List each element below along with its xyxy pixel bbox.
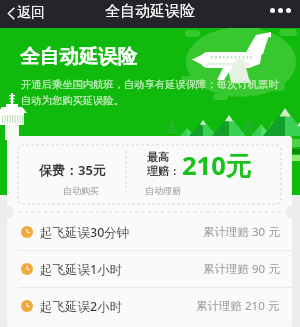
staticText: 返回 xyxy=(17,4,45,22)
button[interactable]: 起飞延误30分钟 xyxy=(7,214,292,250)
staticText: 起飞延误1小时 xyxy=(40,261,123,278)
staticText: 210元 xyxy=(182,148,252,183)
staticText: 起飞延误2小时 xyxy=(40,298,123,315)
staticText: 保费：35元 xyxy=(39,161,106,179)
button[interactable]: More options xyxy=(267,5,294,16)
button[interactable]: 起飞延误2小时 xyxy=(7,287,292,324)
staticText: 累计理赔 210 元 xyxy=(196,298,280,314)
staticText: 最高 xyxy=(147,150,169,164)
button[interactable]: 起飞延误1小时 xyxy=(7,250,292,287)
staticText: 理赔： xyxy=(147,164,180,178)
staticText: 累计理赔 90 元 xyxy=(203,261,280,277)
button[interactable]: 返回 xyxy=(5,2,47,24)
staticText: 全自动延误险 xyxy=(105,2,195,21)
staticText: 自动购买 xyxy=(63,185,99,196)
staticText: 累计理赔 30 元 xyxy=(203,224,280,240)
staticText: 起飞延误30分钟 xyxy=(40,224,130,241)
staticText: 开通后乘坐国内航班，自动享有延误保障；每次订机票时 xyxy=(21,78,279,91)
staticText: 自动理赔 xyxy=(145,185,181,196)
staticText: 自动为您购买延误险。 xyxy=(21,94,124,107)
staticText: 全自动延误险 xyxy=(20,44,137,69)
